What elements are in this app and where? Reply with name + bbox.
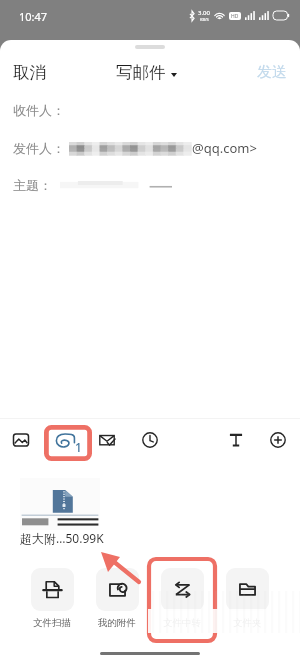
button[interactable]: Mail receipt — [93, 426, 121, 454]
button[interactable]: 文件夹 — [221, 568, 273, 629]
button[interactable]: 写邮件 — [108, 56, 185, 89]
button[interactable]: Schedule — [136, 426, 164, 454]
staticText: 文件扫描 — [33, 617, 71, 629]
button[interactable]: 文件中转 — [156, 568, 208, 629]
button[interactable]: Insert image — [7, 426, 35, 454]
staticText: 3.00 — [198, 9, 210, 17]
staticText: 超大附…50.99K — [20, 530, 104, 546]
staticText: 10:47 — [19, 9, 48, 24]
button[interactable]: 文件扫描 — [26, 568, 78, 629]
staticText: 我的附件 — [98, 617, 136, 629]
staticText: 文件中转 — [163, 617, 201, 629]
staticText: KB/S — [200, 17, 209, 22]
button[interactable]: More options — [264, 426, 292, 454]
button[interactable]: 我的附件 — [91, 568, 143, 629]
staticText: @qq.com> — [192, 139, 257, 157]
button[interactable]: Attachment — [44, 425, 92, 461]
staticText: HD — [231, 13, 239, 20]
button[interactable]: 主题： — [0, 166, 300, 203]
staticText: 收件人： — [13, 102, 65, 118]
staticText: 发送 — [257, 63, 287, 82]
staticText: 取消 — [13, 62, 46, 83]
button[interactable]: 收件人： — [0, 91, 300, 129]
staticText: 主题： — [13, 177, 52, 193]
staticText: 发件人： — [13, 140, 65, 156]
staticText: 1 — [75, 439, 82, 455]
staticText: 文件夹 — [233, 617, 262, 629]
button[interactable]: Text format — [222, 426, 250, 454]
button[interactable]: 发件人： — [0, 129, 300, 166]
button[interactable]: Attachment 超大附件 50.99K — [20, 478, 104, 544]
button[interactable]: 发送 — [244, 54, 300, 91]
staticText: 写邮件 — [116, 62, 166, 83]
button[interactable]: 取消 — [0, 53, 59, 92]
